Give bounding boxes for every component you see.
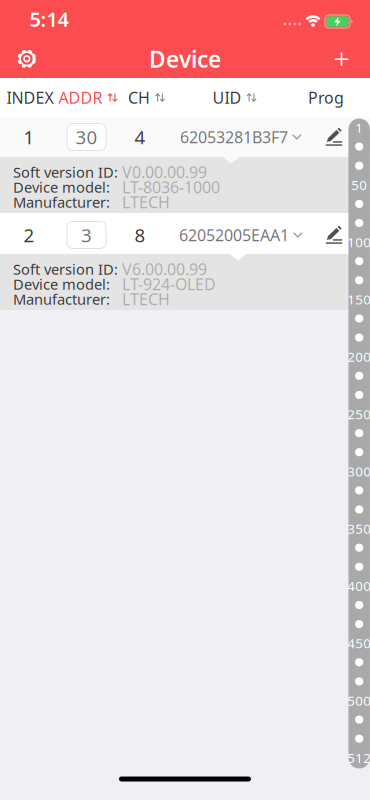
staticText: 4 bbox=[134, 125, 145, 149]
button[interactable]: Address index bbox=[348, 118, 370, 768]
button[interactable]: Settings bbox=[10, 42, 44, 76]
staticText: 500 bbox=[347, 692, 370, 709]
staticText: CH bbox=[128, 87, 150, 108]
staticText: 1 bbox=[355, 119, 363, 136]
staticText: 2 bbox=[23, 223, 34, 247]
staticText: 150 bbox=[347, 290, 370, 308]
staticText: LTECH bbox=[122, 191, 170, 213]
button[interactable]: Program bbox=[323, 225, 345, 245]
button[interactable]: 3 bbox=[67, 221, 106, 248]
staticText: 350 bbox=[347, 520, 370, 537]
staticText: 8 bbox=[134, 223, 145, 247]
staticText: Device model: bbox=[13, 177, 110, 197]
staticText: 250 bbox=[347, 405, 370, 423]
staticText: Manufacturer: bbox=[13, 289, 110, 309]
staticText: ADDR bbox=[58, 87, 102, 108]
staticText: 3 bbox=[81, 223, 92, 247]
staticText: Device bbox=[149, 44, 221, 74]
staticText: Manufacturer: bbox=[13, 192, 110, 212]
staticText: 5:14 bbox=[29, 6, 68, 32]
staticText: 62052005EAA1 bbox=[179, 224, 289, 246]
staticText: UID bbox=[212, 87, 241, 108]
button[interactable]: CH bbox=[128, 87, 165, 108]
staticText: LT-924-OLED bbox=[122, 273, 216, 295]
staticText: 200 bbox=[347, 348, 370, 365]
staticText: INDEX bbox=[6, 87, 53, 108]
staticText: 450 bbox=[347, 634, 370, 652]
staticText: Soft version ID: bbox=[13, 162, 118, 182]
button[interactable]: ADDR bbox=[58, 87, 117, 108]
button[interactable]: UID bbox=[212, 87, 256, 108]
button[interactable]: 62052005EAA1 bbox=[179, 224, 303, 246]
button[interactable]: Add device bbox=[324, 42, 358, 76]
staticText: V0.00.00.99 bbox=[122, 161, 207, 183]
staticText: 400 bbox=[347, 577, 370, 595]
staticText: 1 bbox=[23, 125, 34, 149]
staticText: LTECH bbox=[122, 288, 170, 310]
staticText: 300 bbox=[347, 462, 370, 480]
staticText: Device model: bbox=[13, 274, 110, 294]
staticText: LT-8036-1000 bbox=[122, 176, 220, 198]
staticText: 30 bbox=[75, 125, 97, 149]
button[interactable]: Program bbox=[323, 127, 345, 147]
button[interactable]: 30 bbox=[67, 123, 106, 150]
staticText: 50 bbox=[351, 176, 367, 194]
staticText: 512 bbox=[347, 749, 370, 767]
staticText: Soft version ID: bbox=[13, 259, 118, 279]
staticText: V6.00.00.99 bbox=[122, 258, 207, 280]
staticText: 62053281B3F7 bbox=[180, 126, 288, 148]
staticText: Prog bbox=[308, 87, 344, 108]
staticText: 100 bbox=[347, 233, 370, 251]
button[interactable]: 62053281B3F7 bbox=[180, 126, 302, 148]
